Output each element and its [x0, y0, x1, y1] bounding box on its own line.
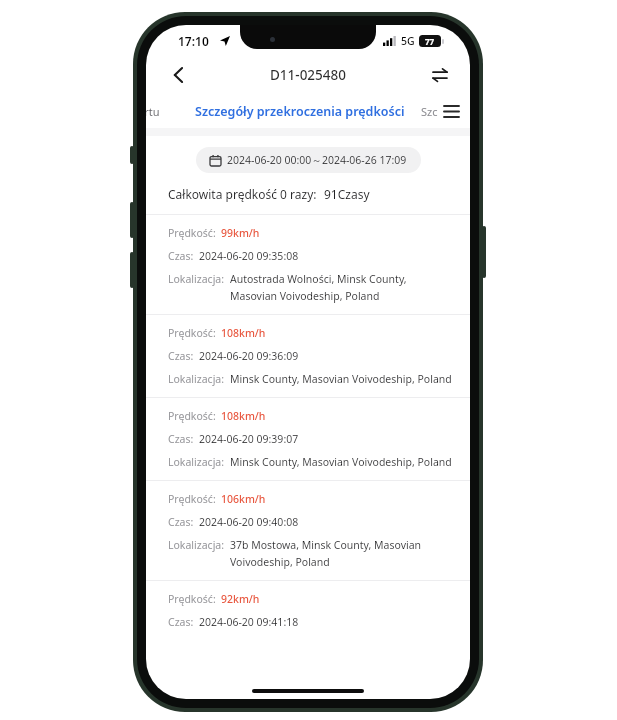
button[interactable]: Prędkość:: [146, 481, 470, 580]
staticText: 108km/h: [221, 409, 266, 423]
button[interactable]: Prędkość:: [146, 315, 470, 397]
staticText: 2024-06-20 00:00～2024-06-26 17:09: [227, 153, 407, 167]
staticText: Minsk County, Masovian Voivodeship, Pola…: [230, 372, 452, 386]
staticText: 108km/h: [221, 326, 266, 340]
staticText: Prędkość:: [168, 492, 216, 506]
staticText: 37b Mostowa, Minsk County, Masovian Voiv…: [230, 538, 454, 569]
button[interactable]: Prędkość:: [146, 215, 470, 314]
staticText: Czas:: [168, 349, 194, 363]
button[interactable]: Szc: [421, 104, 438, 119]
staticText: Minsk County, Masovian Voivodeship, Pola…: [230, 455, 452, 469]
staticText: 2024-06-20 09:35:08: [199, 249, 299, 263]
staticText: Prędkość:: [168, 226, 216, 240]
staticText: D11-025480: [270, 66, 346, 84]
staticText: Prędkość:: [168, 326, 216, 340]
button[interactable]: Szczegóły przekroczenia prędkości: [195, 103, 405, 120]
staticText: 77: [425, 36, 435, 47]
staticText: 2024-06-20 09:41:18: [199, 615, 299, 629]
staticText: 106km/h: [221, 492, 266, 506]
button[interactable]: Prędkość:: [146, 581, 470, 629]
staticText: 17:10: [178, 33, 209, 49]
button[interactable]: ertu: [146, 104, 160, 119]
button[interactable]: Back: [164, 60, 194, 90]
staticText: Prędkość:: [168, 592, 216, 606]
staticText: 91Czasy: [324, 186, 370, 202]
staticText: Autostrada Wolności, Minsk County, Masov…: [230, 272, 454, 303]
staticText: 99km/h: [221, 226, 260, 240]
button[interactable]: Switch: [426, 61, 454, 89]
staticText: Czas:: [168, 515, 194, 529]
staticText: Lokalizacja:: [168, 272, 225, 286]
button[interactable]: Prędkość:: [146, 398, 470, 480]
staticText: Lokalizacja:: [168, 455, 225, 469]
button[interactable]: Menu: [438, 98, 464, 124]
staticText: 5G: [401, 34, 415, 48]
button[interactable]: 2024-06-20 00:00～2024-06-26 17:09: [196, 147, 421, 173]
staticText: 2024-06-20 09:36:09: [199, 349, 299, 363]
staticText: 92km/h: [221, 592, 260, 606]
staticText: Prędkość:: [168, 409, 216, 423]
staticText: Całkowita prędkość 0 razy:: [168, 186, 317, 202]
staticText: Lokalizacja:: [168, 372, 225, 386]
staticText: Lokalizacja:: [168, 538, 225, 552]
staticText: 2024-06-20 09:39:07: [199, 432, 299, 446]
staticText: 2024-06-20 09:40:08: [199, 515, 299, 529]
staticText: Czas:: [168, 432, 194, 446]
staticText: Czas:: [168, 249, 194, 263]
staticText: Czas:: [168, 615, 194, 629]
